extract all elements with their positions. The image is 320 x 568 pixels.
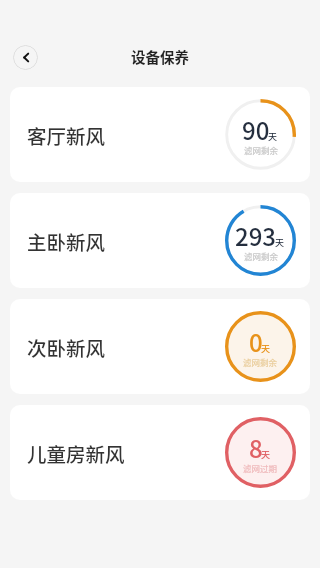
staticText: 293: [235, 218, 277, 253]
staticText: 客厅新风: [27, 121, 106, 149]
staticText: 天: [261, 342, 271, 355]
staticText: 主卧新风: [27, 227, 106, 255]
button[interactable]: Back: [13, 45, 38, 70]
button[interactable]: 儿童房新风: [10, 405, 310, 500]
staticText: 滤网剩余: [243, 356, 278, 368]
button[interactable]: 主卧新风: [10, 193, 310, 288]
staticText: 天: [275, 236, 285, 249]
staticText: 设备保养: [131, 46, 189, 67]
button[interactable]: 客厅新风: [10, 87, 310, 182]
staticText: 8: [249, 430, 263, 465]
staticText: 次卧新风: [27, 333, 106, 361]
staticText: 天: [268, 130, 278, 143]
staticText: 儿童房新风: [27, 439, 125, 467]
button[interactable]: 次卧新风: [10, 299, 310, 394]
staticText: 90: [242, 112, 270, 147]
staticText: 滤网剩余: [244, 250, 279, 262]
staticText: 天: [261, 448, 271, 461]
staticText: 滤网剩余: [244, 144, 279, 156]
staticText: 滤网过期: [243, 462, 278, 474]
staticText: 0: [249, 324, 263, 359]
